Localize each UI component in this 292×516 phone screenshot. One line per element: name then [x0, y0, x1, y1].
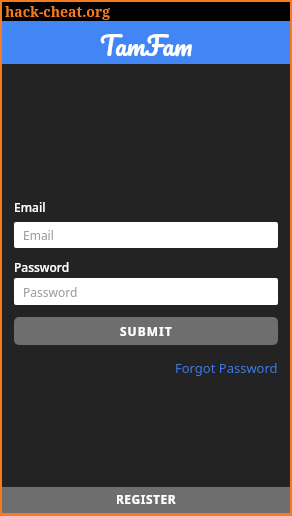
staticText: hack-cheat.org — [5, 2, 111, 21]
staticText: REGISTER — [116, 491, 177, 507]
staticText: Password — [14, 259, 70, 275]
button[interactable]: Email — [14, 222, 278, 248]
staticText: TamFam — [100, 23, 193, 66]
staticText: SUBMIT — [120, 323, 173, 339]
button[interactable]: REGISTER — [2, 487, 290, 513]
button[interactable]: Password — [14, 278, 278, 305]
button[interactable]: Forgot Password — [175, 359, 278, 377]
staticText: Email — [23, 227, 54, 243]
staticText: Password — [23, 284, 78, 300]
button[interactable]: SUBMIT — [14, 317, 278, 345]
staticText: Forgot Password — [175, 359, 278, 377]
staticText: Email — [14, 199, 46, 215]
